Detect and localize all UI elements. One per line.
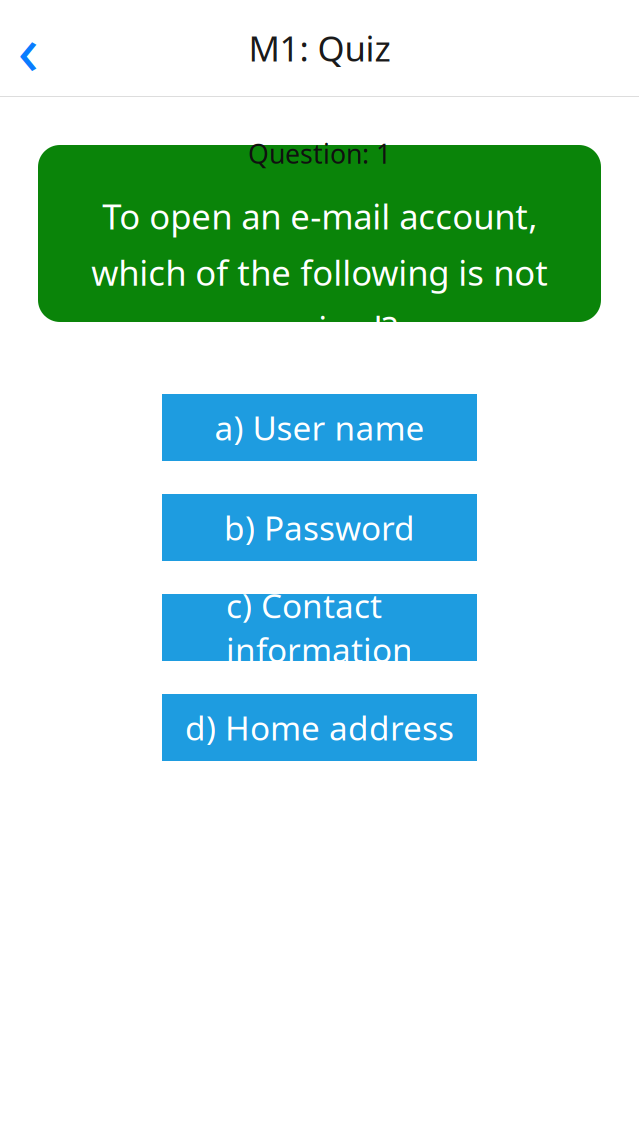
staticText: To open an e-mail account, which of the …	[91, 193, 548, 351]
button[interactable]: b) Password	[162, 494, 477, 561]
staticText: b) Password	[224, 505, 415, 550]
staticText: a) User name	[214, 405, 424, 450]
staticText: c) Contact information	[226, 583, 413, 672]
staticText: ‹	[17, 2, 38, 94]
staticText: d) Home address	[185, 705, 454, 750]
button[interactable]: Back	[0, 18, 56, 78]
staticText: Question: 1	[248, 136, 391, 171]
button[interactable]: a) User name	[162, 394, 477, 461]
staticText: M1: Quiz	[248, 25, 390, 71]
button[interactable]: c) Contact information	[162, 594, 477, 661]
button[interactable]: d) Home address	[162, 694, 477, 761]
